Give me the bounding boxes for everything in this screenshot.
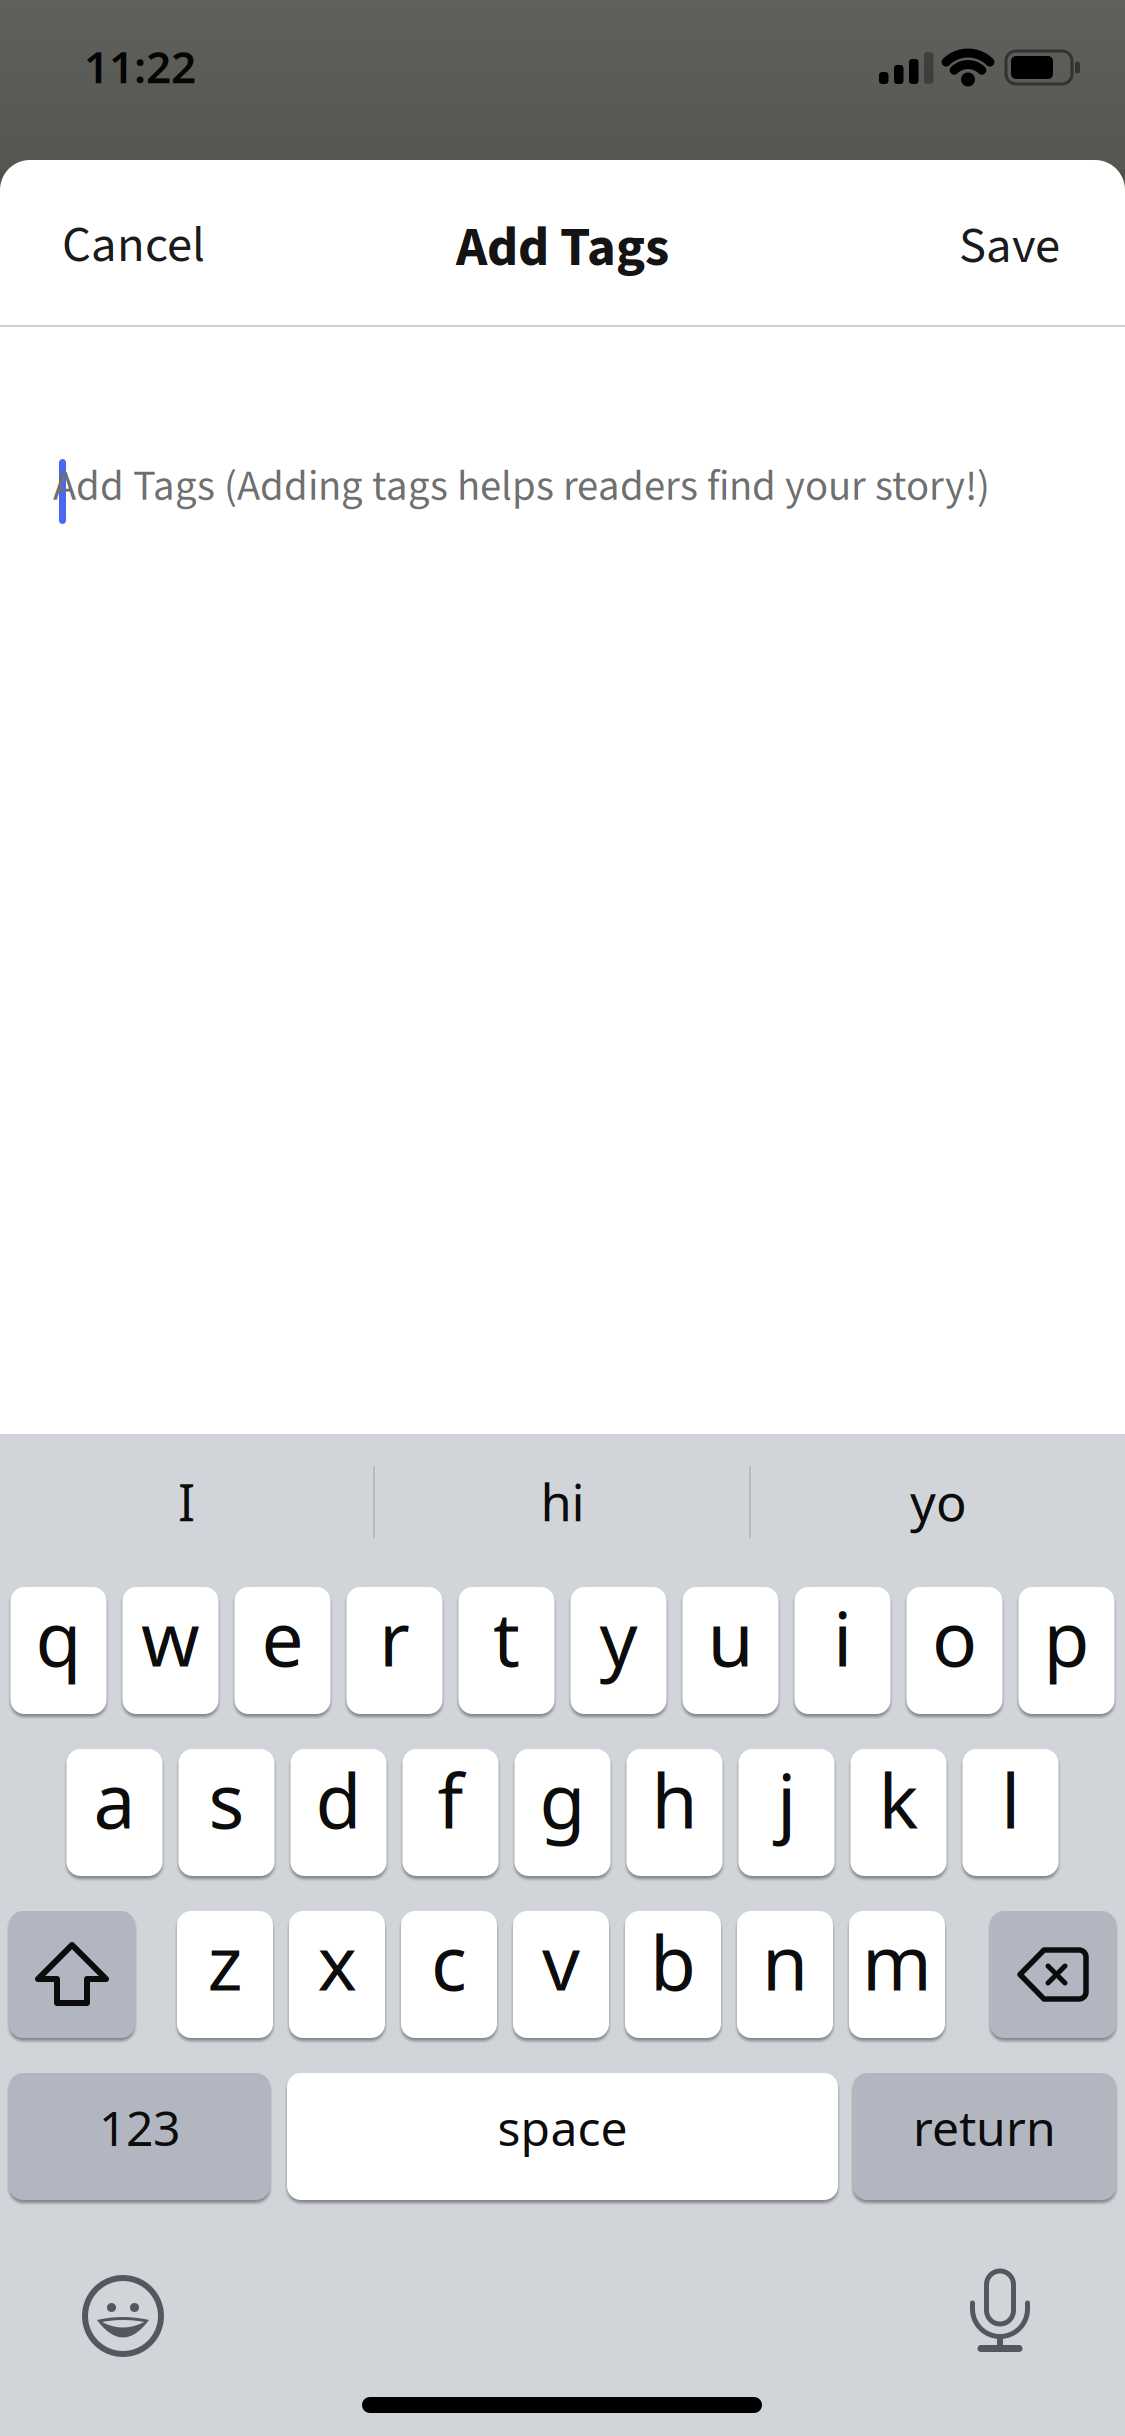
button[interactable]: I [0,1434,373,1587]
staticText: j [777,1750,796,1849]
button[interactable]: h [626,1749,722,1876]
button[interactable]: r [346,1587,442,1714]
staticText: h [651,1750,697,1849]
button[interactable]: b [625,1911,721,2038]
button[interactable] [990,1911,1116,2038]
staticText: return [913,2096,1056,2159]
button[interactable]: t [458,1587,554,1714]
staticText: x [317,1912,356,2011]
staticText: 11:22 [84,37,196,95]
staticText: u [707,1588,753,1687]
button[interactable]: k [850,1749,946,1876]
button[interactable]: f [402,1749,498,1876]
staticText: m [862,1912,932,2011]
button[interactable]: yo [752,1434,1125,1587]
button[interactable]: u [682,1587,778,1714]
staticText: q [35,1588,81,1687]
staticText: w [141,1588,200,1687]
staticText: f [437,1750,463,1849]
staticText: yo [910,1468,967,1535]
button[interactable]: 123 [9,2073,270,2200]
button[interactable]: m [849,1911,945,2038]
staticText: l [1001,1750,1020,1849]
staticText: i [833,1588,852,1687]
button[interactable]: z [177,1911,273,2038]
button[interactable]: i [794,1587,890,1714]
button[interactable]: space [287,2073,838,2200]
staticText: s [208,1750,244,1849]
button[interactable]: s [178,1749,274,1876]
staticText: r [379,1588,410,1687]
staticText: k [878,1750,918,1849]
button[interactable]: Save [939,190,1080,302]
staticText: y [599,1588,637,1687]
staticText: 123 [99,2096,180,2159]
staticText: d [315,1750,361,1849]
staticText: c [431,1912,467,2011]
button[interactable]: e [234,1587,330,1714]
button[interactable]: Cancel [42,189,225,301]
button[interactable]: w [122,1587,218,1714]
staticText: t [493,1588,520,1687]
button[interactable]: Add Tags (Adding tags helps readers find… [0,0,1125,180]
button[interactable] [958,2268,1042,2356]
staticText: v [542,1912,580,2011]
staticText: n [762,1912,808,2011]
staticText: space [497,2096,627,2159]
button[interactable]: a [66,1749,162,1876]
staticText: hi [540,1468,584,1535]
button[interactable]: n [737,1911,833,2038]
staticText: e [261,1588,303,1687]
staticText: I [178,1468,195,1535]
button[interactable]: l [962,1749,1058,1876]
button[interactable]: q [10,1587,106,1714]
button[interactable]: d [290,1749,386,1876]
button[interactable]: c [401,1911,497,2038]
button[interactable] [9,1911,135,2038]
staticText: Cancel [62,209,205,281]
staticText: Add Tags (Adding tags helps readers find… [53,456,990,517]
staticText: p [1043,1588,1089,1687]
staticText: Save [959,210,1060,282]
button[interactable]: hi [376,1434,749,1587]
staticText: g [539,1750,585,1849]
button[interactable]: j [738,1749,834,1876]
button[interactable] [81,2274,165,2358]
button[interactable]: g [514,1749,610,1876]
staticText: Add Tags [456,209,669,287]
button[interactable]: y [570,1587,666,1714]
button[interactable]: v [513,1911,609,2038]
staticText: b [650,1912,696,2011]
staticText: z [207,1912,242,2011]
staticText: o [932,1588,977,1687]
staticText: a [93,1750,135,1849]
button[interactable]: x [289,1911,385,2038]
button[interactable]: p [1018,1587,1114,1714]
button[interactable]: return [853,2073,1116,2200]
button[interactable]: o [906,1587,1002,1714]
